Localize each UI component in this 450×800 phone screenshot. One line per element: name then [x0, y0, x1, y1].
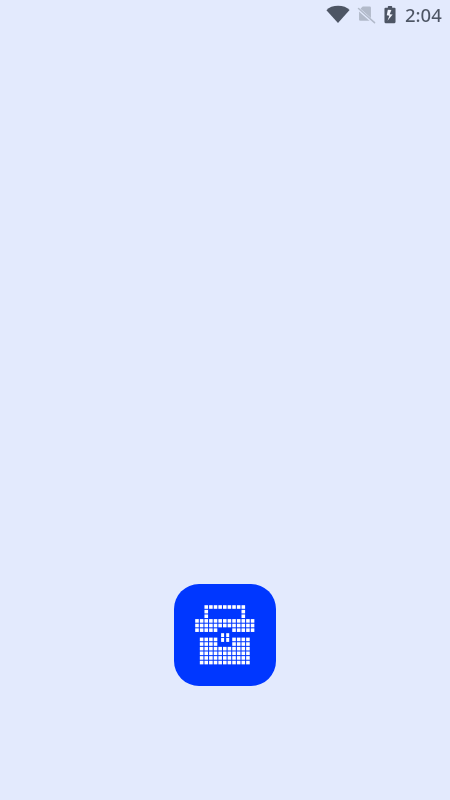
other: No SIM card [356, 5, 374, 23]
other: App icon [174, 584, 276, 686]
other: Wi-Fi [326, 5, 350, 23]
staticText: 2:04 [405, 2, 442, 27]
other: Battery charging [383, 5, 397, 24]
